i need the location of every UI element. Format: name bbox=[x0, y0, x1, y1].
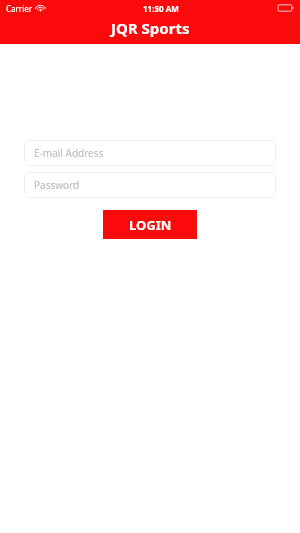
staticText: 11:50 AM bbox=[143, 3, 179, 14]
button[interactable]: E-mail Address input bbox=[24, 140, 276, 166]
button[interactable]: Password input bbox=[24, 172, 276, 198]
staticText: Password bbox=[34, 178, 80, 192]
staticText: Carrier bbox=[6, 3, 33, 14]
staticText: JQR Sports bbox=[111, 18, 190, 38]
staticText: E-mail Address bbox=[34, 146, 104, 160]
button[interactable]: LOGIN bbox=[103, 210, 197, 239]
staticText: LOGIN bbox=[129, 216, 172, 234]
